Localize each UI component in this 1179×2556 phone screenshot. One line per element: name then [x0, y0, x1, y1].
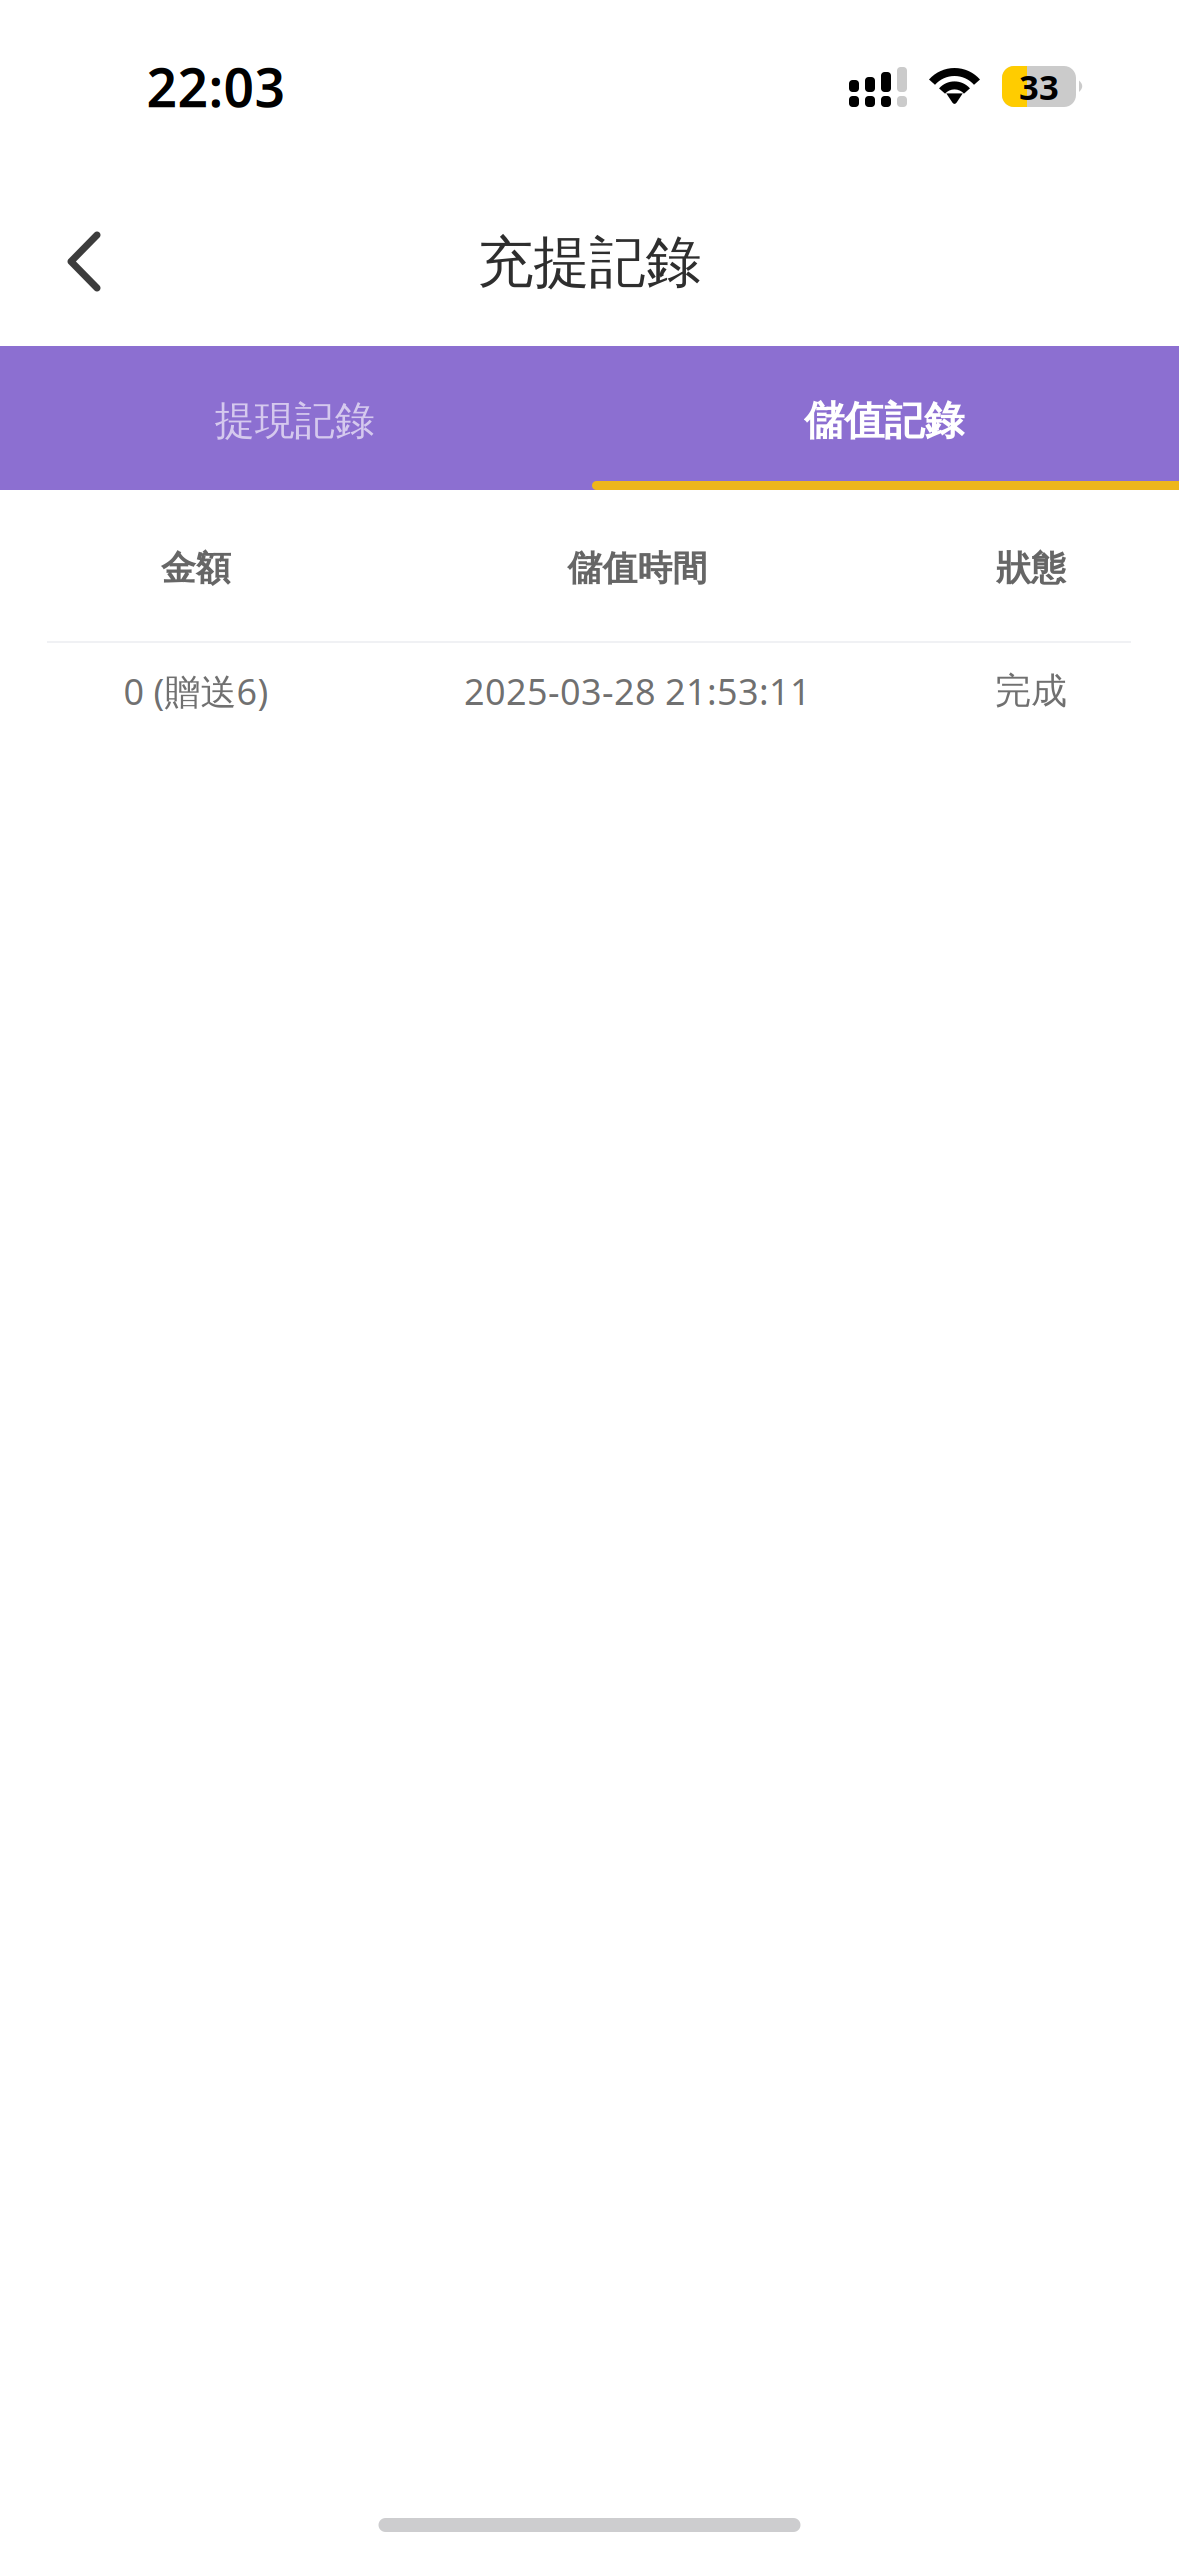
- staticText: 儲值時間: [567, 547, 707, 590]
- staticText: 2025-03-28 21:53:11: [464, 667, 811, 715]
- staticText: 0 (贈送6): [123, 667, 268, 715]
- staticText: 儲值記錄: [804, 396, 964, 445]
- button[interactable]: 提現記錄: [0, 346, 589, 490]
- button[interactable]: 儲值記錄: [589, 346, 1179, 490]
- staticText: 33: [1019, 63, 1059, 109]
- button[interactable]: Back: [0, 192, 139, 326]
- staticText: 充提記錄: [477, 228, 701, 297]
- staticText: 提現記錄: [215, 396, 375, 445]
- staticText: 完成: [995, 669, 1067, 713]
- staticText: 狀態: [996, 547, 1066, 590]
- staticText: 金額: [161, 547, 231, 590]
- staticText: 22:03: [146, 51, 285, 122]
- button[interactable]: 0 (贈送6): [0, 643, 1179, 743]
